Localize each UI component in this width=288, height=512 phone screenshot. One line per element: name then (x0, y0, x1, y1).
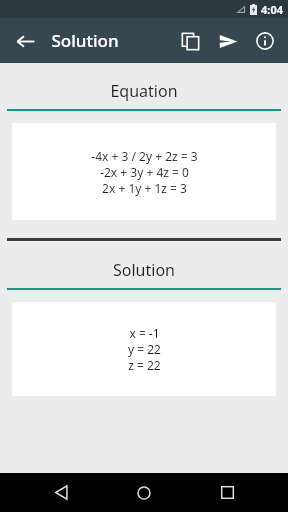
button[interactable]: Info (247, 23, 283, 59)
staticText: 2x + 1y + 1z = 3 (102, 180, 187, 196)
staticText: 4:04 (261, 2, 283, 17)
button[interactable]: Recent apps (205, 473, 249, 512)
button[interactable]: Back (8, 24, 42, 58)
button[interactable]: Copy (172, 23, 208, 59)
staticText: Equation (110, 80, 178, 102)
button[interactable]: Back (39, 473, 83, 512)
staticText: Solution (113, 259, 175, 281)
staticText: x = -1 (129, 325, 160, 341)
button[interactable]: -4x + 3 / 2y + 2z = 3 (12, 123, 276, 220)
button[interactable]: x = -1 (12, 302, 276, 396)
staticText: -2x + 3y + 4z = 0 (100, 164, 189, 180)
button[interactable]: Home (122, 473, 166, 512)
staticText: Solution (51, 29, 119, 52)
button[interactable]: Send (210, 23, 246, 59)
staticText: z = 22 (128, 357, 161, 373)
staticText: y = 22 (128, 341, 161, 357)
staticText: -4x + 3 / 2y + 2z = 3 (91, 148, 198, 164)
